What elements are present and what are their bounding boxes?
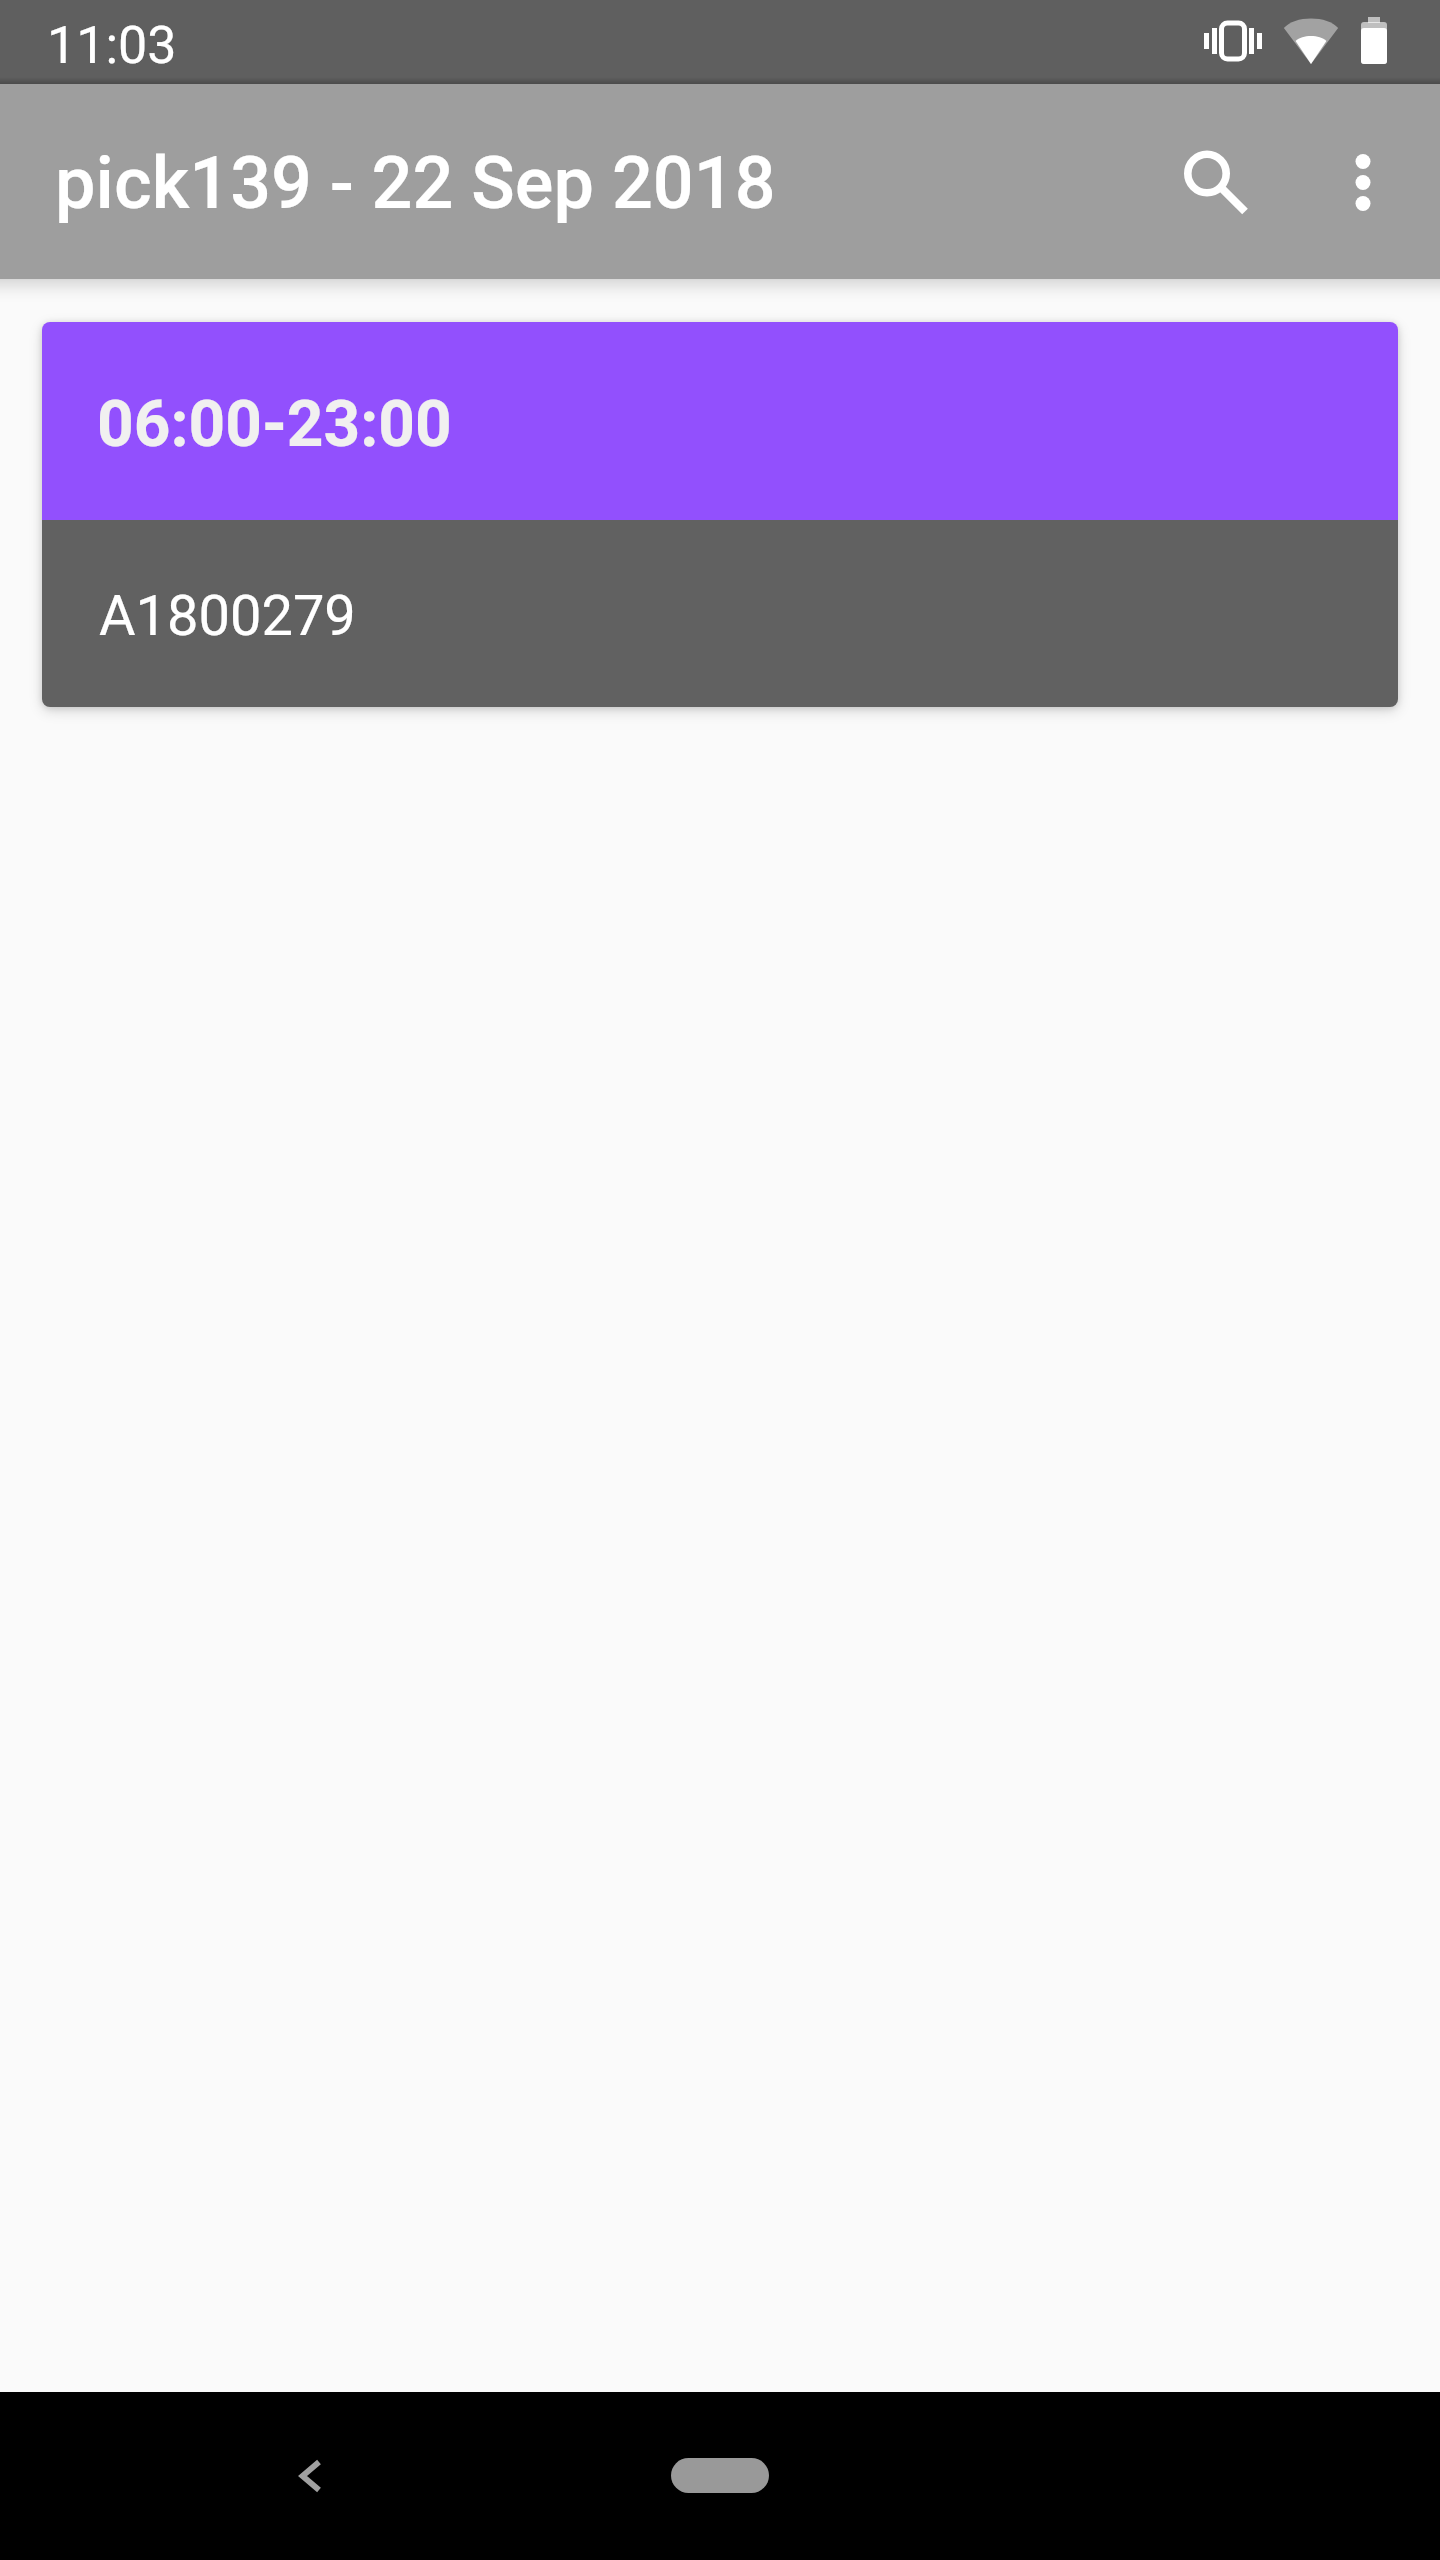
staticText: 06:00-23:00 [97, 387, 452, 462]
staticText: A1800279 [99, 583, 356, 649]
button[interactable]: Search [1135, 110, 1279, 254]
button[interactable]: Home [671, 2458, 769, 2493]
button[interactable]: Back [251, 2426, 351, 2526]
button[interactable]: More options [1291, 110, 1435, 254]
staticText: 11:03 [47, 15, 177, 76]
staticText: pick139 - 22 Sep 2018 [55, 141, 776, 225]
button[interactable]: 06:00-23:00 [42, 322, 1398, 707]
